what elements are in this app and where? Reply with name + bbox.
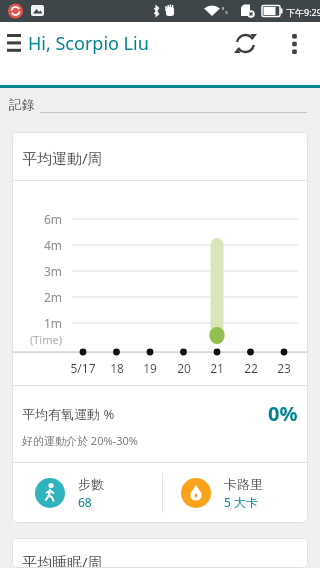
staticText: 0% <box>268 400 298 427</box>
staticText: 6m <box>32 211 62 227</box>
button[interactable]: 卡路里 <box>163 463 308 523</box>
staticText: 3m <box>32 263 62 279</box>
staticText: 記錄 <box>9 96 35 112</box>
staticText: 好的運動介於 20%-30% <box>22 433 138 448</box>
staticText: (Time) <box>20 332 62 347</box>
staticText: Hi, Scorpio Liu <box>28 31 149 56</box>
staticText: 平均有氧運動 % <box>22 405 115 423</box>
button[interactable] <box>277 27 311 61</box>
staticText: 4m <box>32 237 62 253</box>
staticText: 20 <box>168 360 200 376</box>
staticText: 68 <box>78 494 92 510</box>
staticText: 下午9:29 <box>286 6 320 18</box>
staticText: 23 <box>268 360 300 376</box>
staticText: 18 <box>101 360 133 376</box>
staticText: 2m <box>32 289 62 305</box>
staticText: 5/17 <box>67 360 99 376</box>
button[interactable] <box>228 26 262 60</box>
button[interactable]: 平均有氧運動 % <box>12 386 308 462</box>
staticText: 平均運動/周 <box>22 148 103 168</box>
staticText: 步數 <box>78 476 104 492</box>
staticText: 19 <box>134 360 166 376</box>
button[interactable]: 步數 <box>12 463 162 523</box>
staticText: 卡路里 <box>224 476 263 492</box>
staticText: 1m <box>32 315 62 331</box>
button[interactable] <box>0 26 31 60</box>
staticText: 5 大卡 <box>224 494 258 510</box>
staticText: 平均睡眠/周 <box>22 552 103 568</box>
staticText: 22 <box>235 360 267 376</box>
staticText: 21 <box>201 360 233 376</box>
